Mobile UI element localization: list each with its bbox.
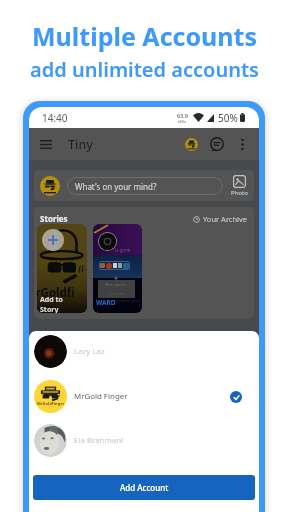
button[interactable]: Messenger xyxy=(208,135,226,153)
staticText: 63.9 xyxy=(177,112,188,119)
staticText: MrGoldFinger xyxy=(37,401,65,406)
staticText: add unlimited accounts xyxy=(30,56,259,83)
staticText: Multiple Accounts xyxy=(32,19,257,53)
button[interactable]: More options xyxy=(234,136,250,152)
button[interactable]: Your Archive xyxy=(193,214,248,224)
staticText: Web games xyxy=(105,282,128,287)
staticText: Ela Brahmani xyxy=(74,435,124,446)
staticText: is gone xyxy=(115,247,131,253)
staticText: MrGold Finger xyxy=(74,391,128,402)
staticText: kB/s xyxy=(178,119,187,124)
staticText: 50% xyxy=(218,111,238,125)
staticText: 14:40 xyxy=(42,111,68,125)
staticText: Add Account xyxy=(120,482,169,493)
staticText: brought to you by xyxy=(115,299,141,303)
staticText: Stories xyxy=(40,213,68,224)
staticText: play now xyxy=(109,291,124,296)
staticText: Photo xyxy=(231,189,248,197)
button[interactable]: Account avatar xyxy=(185,138,198,151)
button[interactable]: Menu xyxy=(38,136,54,152)
staticText: Tiny xyxy=(68,136,93,153)
staticText: Your Archive xyxy=(203,214,248,224)
staticText: Lazy Laz xyxy=(74,346,105,357)
button[interactable]: Add to story xyxy=(37,224,87,313)
button[interactable]: Ela Brahmani xyxy=(29,418,259,463)
button[interactable]: Photo xyxy=(231,175,248,197)
button[interactable]: Lazy Laz xyxy=(29,331,259,374)
staticText: Add to xyxy=(40,295,63,305)
button[interactable]: MrGoldFinger xyxy=(29,374,259,419)
button[interactable]: What's on your mind? xyxy=(67,177,223,195)
staticText: WARD xyxy=(96,298,116,307)
button[interactable]: Your profile xyxy=(40,176,60,196)
button[interactable]: Add Account xyxy=(33,475,255,500)
staticText: What's on your mind? xyxy=(75,181,157,192)
staticText: lrGoldfinge xyxy=(37,285,82,313)
staticText: Story xyxy=(40,305,59,313)
button[interactable]: Story xyxy=(93,224,142,313)
